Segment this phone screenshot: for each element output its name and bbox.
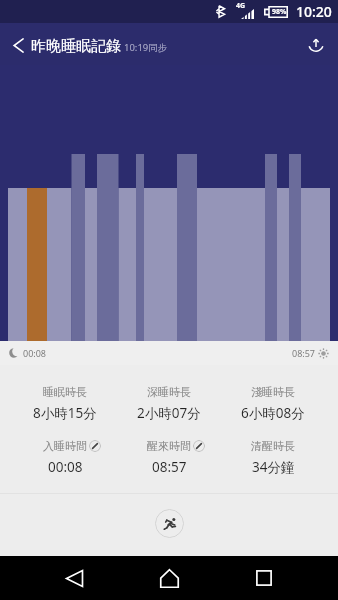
button[interactable]: Edit [193,440,205,452]
staticText: 入睡時間 [43,439,87,453]
button[interactable]: Back [51,556,98,600]
button[interactable]: Back [0,23,31,65]
staticText: 08:57 [152,458,187,476]
staticText: 08:57 [292,347,316,359]
button[interactable]: Share [294,23,338,65]
button[interactable]: Home [146,556,193,600]
staticText: 98% [272,7,287,17]
staticText: 8小時15分 [33,404,97,422]
button[interactable]: Recents [240,556,287,600]
staticText: 昨晚睡眠記錄 [31,37,121,56]
staticText: 睡眠時長 [43,385,87,399]
staticText: 深睡時長 [147,385,191,399]
staticText: 清醒時長 [251,439,295,453]
staticText: 34分鐘 [252,458,295,476]
staticText: 淺睡時長 [251,385,295,399]
staticText: 醒來時間 [147,439,191,453]
button[interactable]: Activity [155,509,184,538]
staticText: 00:08 [23,347,47,359]
staticText: 10:19同步 [124,41,168,54]
staticText: 4G [236,1,246,11]
staticText: 2小時07分 [137,404,201,422]
staticText: 00:08 [48,458,83,476]
button[interactable]: Edit [89,440,101,452]
staticText: 10:20 [296,2,332,21]
staticText: 6小時08分 [241,404,305,422]
